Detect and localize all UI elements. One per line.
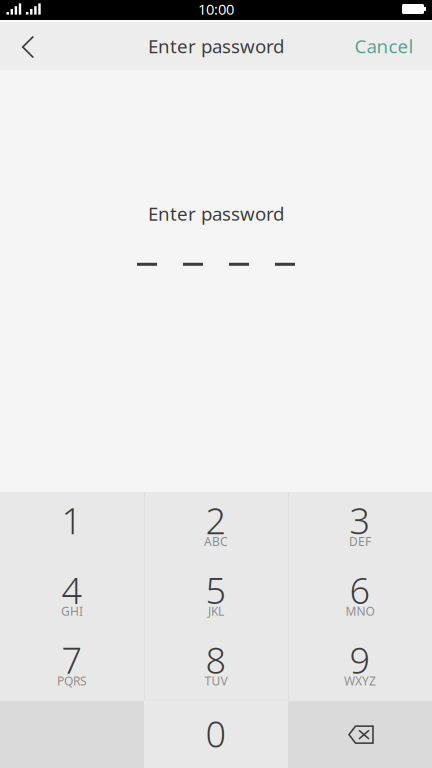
button[interactable]: 6 (288, 562, 432, 631)
staticText: 7 (61, 636, 82, 684)
button[interactable]: 8 (144, 631, 288, 700)
button[interactable]: Back (0, 22, 54, 70)
staticText: JKL (208, 603, 224, 619)
staticText: 10:00 (198, 0, 234, 19)
button[interactable]: Delete (288, 701, 432, 768)
button[interactable]: 9 (288, 631, 432, 700)
staticText: 8 (205, 636, 226, 684)
button[interactable]: 0 (144, 701, 288, 768)
staticText: 9 (349, 636, 370, 684)
staticText: 2 (205, 496, 226, 544)
staticText: 5 (205, 566, 226, 614)
staticText: WXYZ (344, 673, 376, 689)
staticText: Cancel (354, 34, 413, 58)
button[interactable]: 1 (0, 492, 144, 561)
staticText: MNO (345, 603, 374, 619)
button[interactable]: 7 (0, 631, 144, 700)
button[interactable]: 4 (0, 562, 144, 631)
staticText: GHI (61, 603, 83, 619)
staticText: 3 (349, 496, 370, 544)
staticText: Enter password (148, 201, 284, 226)
staticText: ABC (204, 533, 228, 549)
button[interactable]: 5 (144, 562, 288, 631)
staticText: 1 (61, 496, 82, 544)
button[interactable]: 3 (288, 492, 432, 561)
staticText: Enter password (148, 34, 284, 58)
staticText: TUV (204, 673, 227, 689)
staticText: PQRS (57, 673, 87, 689)
staticText: 0 (205, 710, 226, 757)
button[interactable]: Cancel (336, 22, 432, 70)
staticText: DEF (349, 533, 371, 549)
staticText: 6 (349, 566, 370, 614)
staticText: 4 (61, 566, 82, 614)
button[interactable]: 2 (144, 492, 288, 561)
